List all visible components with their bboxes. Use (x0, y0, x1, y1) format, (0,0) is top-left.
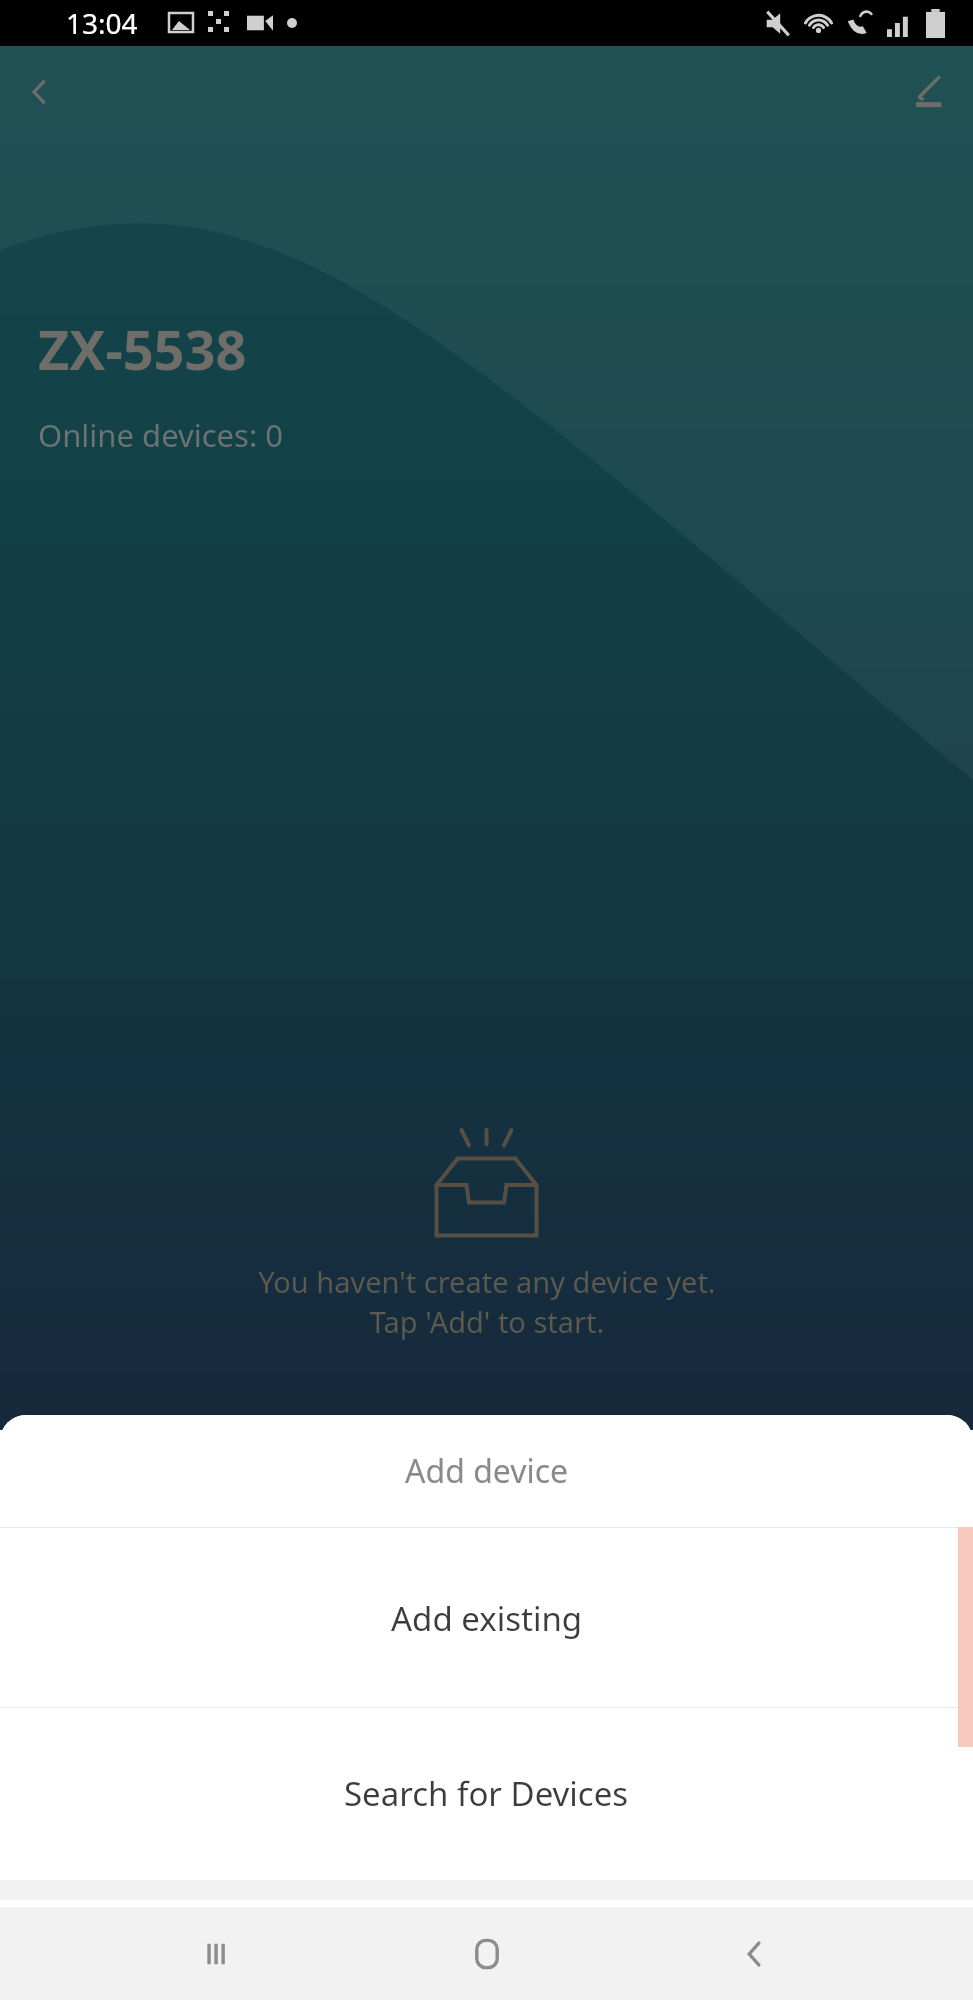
button[interactable]: Edit (895, 58, 959, 122)
button[interactable]: Recent apps (168, 1907, 268, 2000)
staticText: Online devices: 0 (38, 414, 284, 456)
staticText: Add existing (391, 1596, 583, 1641)
button[interactable]: Cancel (0, 1900, 973, 2000)
button[interactable]: Back (705, 1907, 805, 2000)
staticText: ZX-5538 (38, 312, 247, 386)
staticText: You haven't create any device yet. Tap '… (258, 1262, 716, 1342)
staticText: Add device (405, 1449, 569, 1493)
staticText: Search for Devices (344, 1771, 629, 1816)
button[interactable]: Back (8, 60, 72, 124)
button[interactable]: Add existing (0, 1528, 973, 1708)
button[interactable]: Home (437, 1907, 537, 2000)
button[interactable]: Search for Devices (0, 1708, 973, 1879)
staticText: 13:04 (66, 4, 138, 42)
staticText: Cancel (435, 1928, 538, 1973)
button[interactable]: Add device (0, 1415, 973, 1527)
